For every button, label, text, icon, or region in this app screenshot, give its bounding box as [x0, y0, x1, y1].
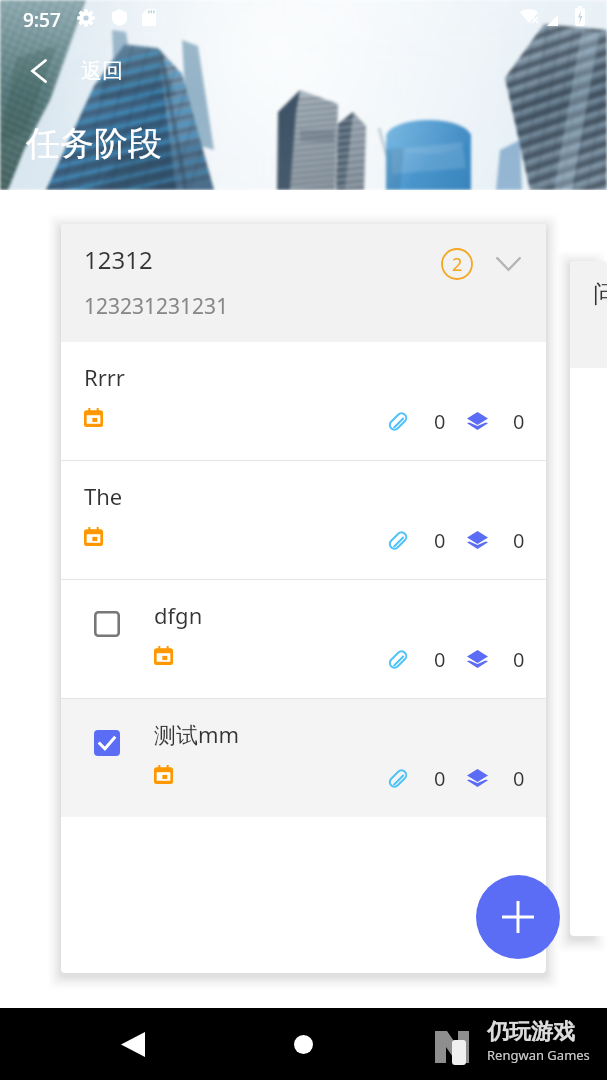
staticText: 任务阶段 — [26, 122, 162, 165]
button[interactable]: Attachments — [389, 646, 446, 672]
staticText: 0 — [513, 646, 525, 672]
staticText: 0 — [434, 527, 446, 553]
staticText: 仍玩游戏 — [487, 1018, 575, 1046]
staticText: 0 — [513, 527, 525, 553]
staticText: 9:57 — [23, 7, 61, 33]
button[interactable]: Toggle dfgn — [94, 611, 120, 637]
button[interactable]: Subtasks — [467, 765, 525, 791]
button[interactable]: Toggle 测试mm — [61, 699, 546, 817]
button[interactable]: Subtasks — [467, 646, 525, 672]
button[interactable]: 2 items — [441, 248, 473, 280]
staticText: 0 — [434, 646, 446, 672]
staticText: 0 — [513, 408, 525, 434]
button[interactable]: 问题反馈 — [570, 261, 607, 936]
button[interactable]: Attachments — [389, 765, 446, 791]
staticText: 测试mm — [154, 719, 240, 749]
staticText: 返回 — [81, 58, 123, 84]
staticText: 123231231231 — [84, 292, 229, 321]
button[interactable]: Subtasks — [467, 408, 525, 434]
button[interactable]: 12312 — [61, 224, 546, 342]
button[interactable]: The — [61, 461, 546, 579]
staticText: 0 — [434, 765, 446, 791]
button[interactable]: Expand — [490, 246, 526, 282]
button[interactable]: Toggle 测试mm — [94, 730, 120, 756]
button[interactable]: Home — [266, 1008, 340, 1080]
button[interactable]: Toggle dfgn — [61, 580, 546, 698]
staticText: 0 — [513, 765, 525, 791]
staticText: The — [84, 481, 123, 511]
button[interactable]: Back — [96, 1008, 170, 1080]
button[interactable]: Add — [476, 875, 560, 959]
staticText: Rrrr — [84, 362, 125, 392]
button[interactable]: Back — [0, 52, 139, 90]
button[interactable]: Attachments — [389, 527, 446, 553]
staticText: Rengwan Games — [487, 1046, 590, 1064]
button[interactable]: Attachments — [389, 408, 446, 434]
button[interactable]: Rrrr — [61, 342, 546, 460]
button[interactable]: Subtasks — [467, 527, 525, 553]
staticText: 0 — [434, 408, 446, 434]
staticText: 12312 — [84, 243, 153, 276]
staticText: 问题反馈 — [593, 279, 607, 309]
staticText: dfgn — [154, 600, 203, 630]
staticText: 2 — [452, 252, 463, 277]
